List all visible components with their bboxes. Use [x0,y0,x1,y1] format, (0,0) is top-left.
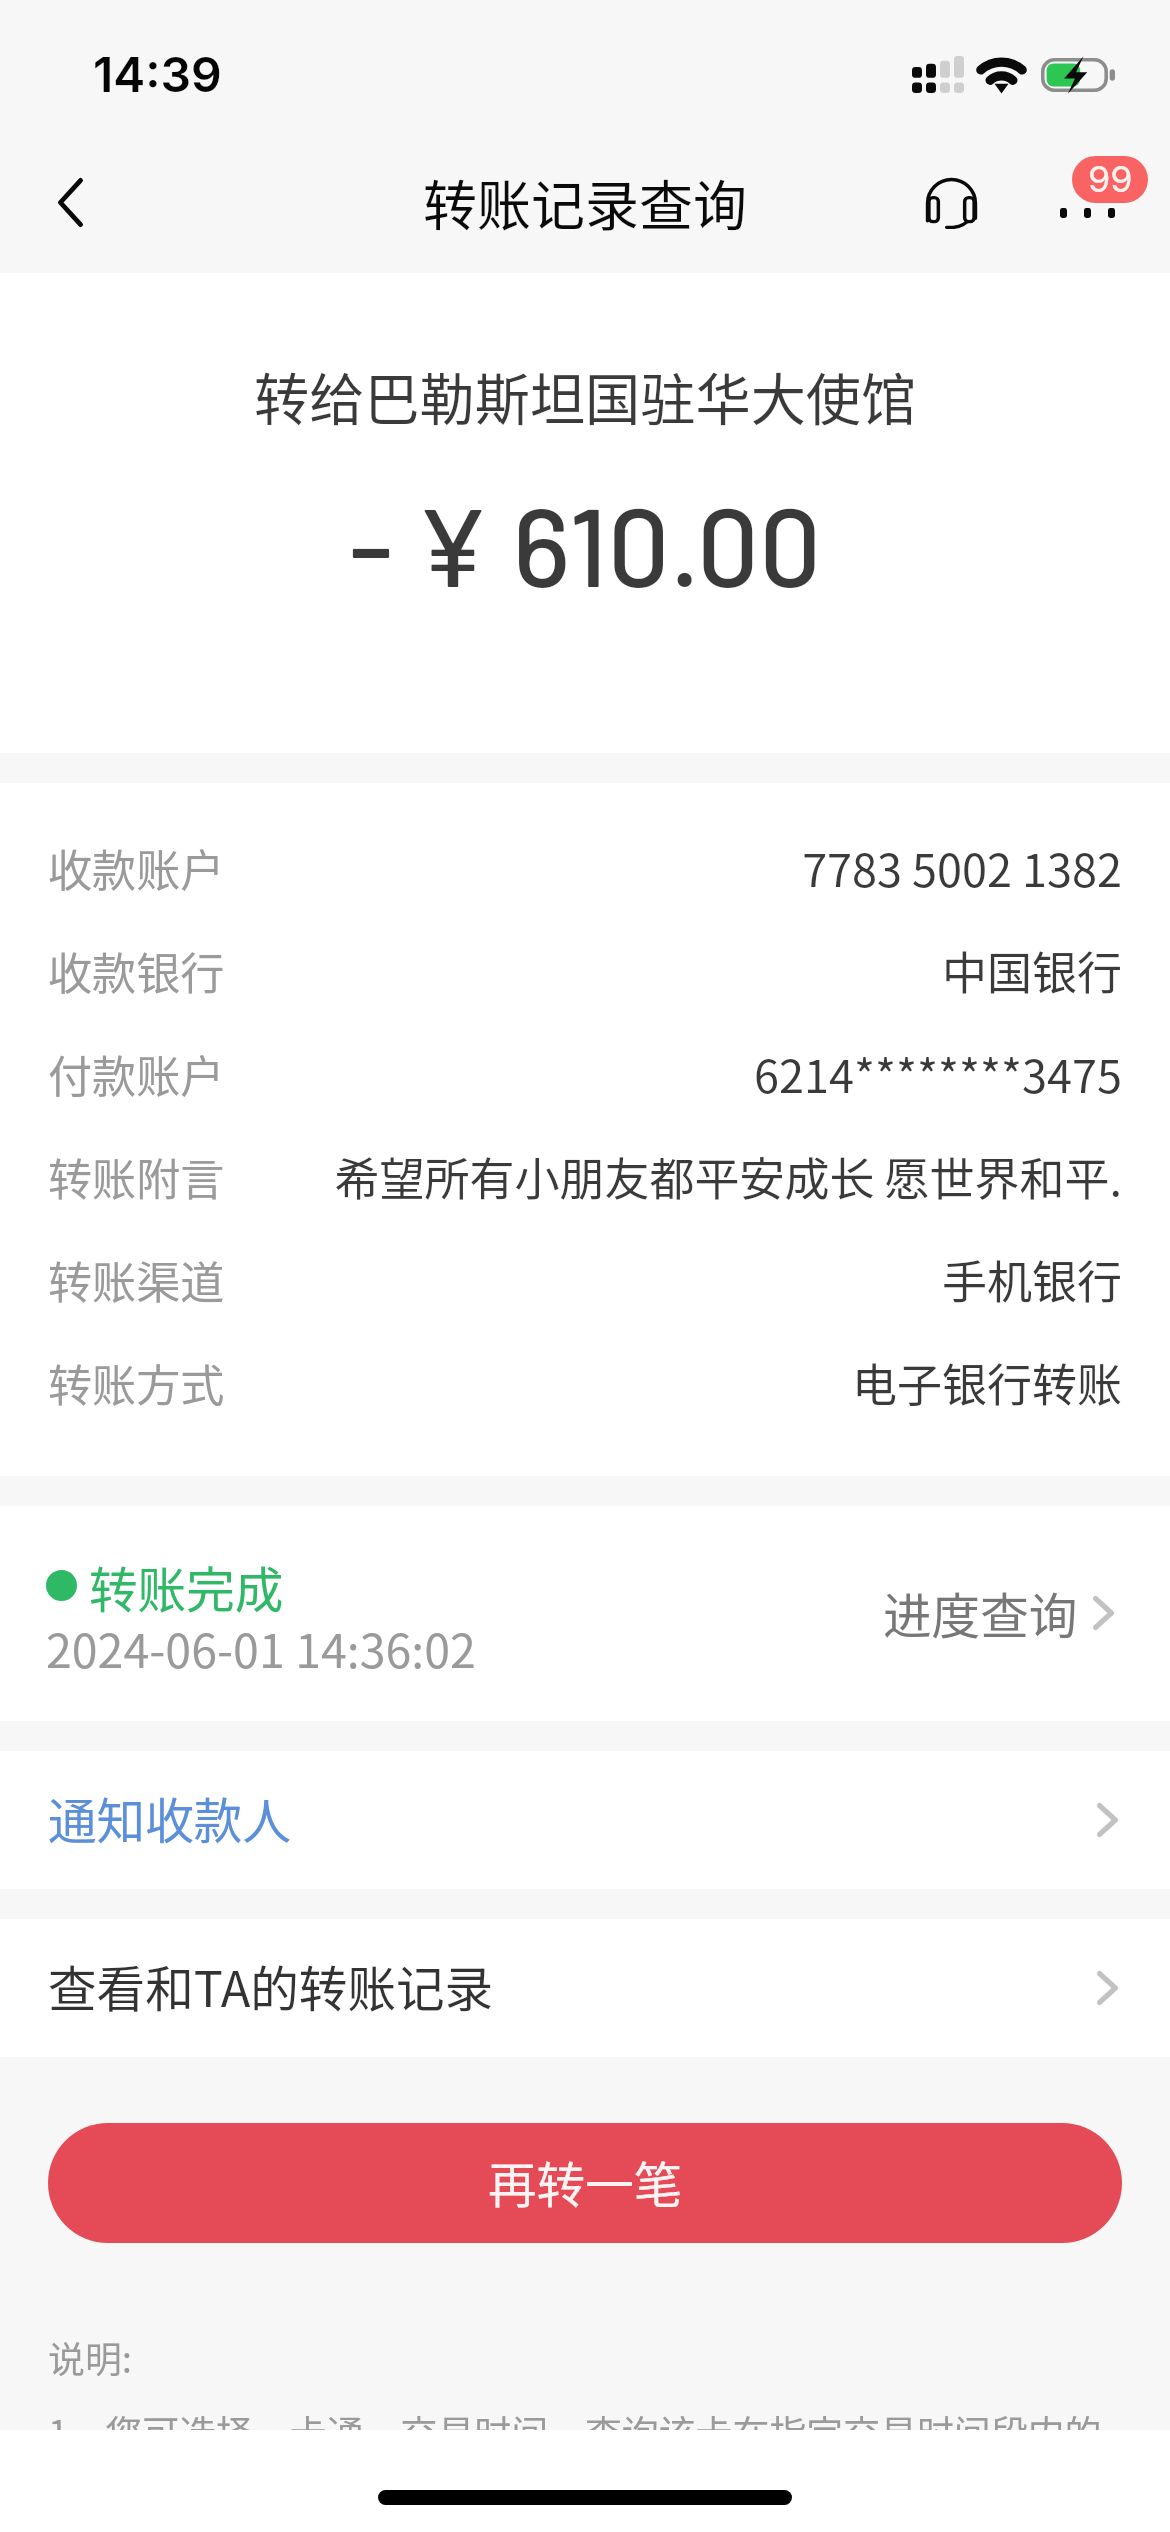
staticText: 转账方式 [48,1351,225,1415]
staticText: 转账附言 [48,1145,225,1209]
button[interactable]: Back [0,132,141,273]
staticText: 手机银行 [243,1247,1122,1312]
staticText: 转给巴勒斯坦国驻华大使馆 [254,356,917,436]
staticText: 再转一笔 [488,2147,683,2217]
staticText: 希望所有小朋友都平安成长 愿世界和平. [243,1144,1122,1209]
button[interactable]: 进度查询 [853,1554,1123,1672]
staticText: 99 [1088,157,1133,201]
staticText: 说明: [48,2330,133,2383]
staticText: 中国银行 [243,938,1122,1003]
staticText: 付款账户 [48,1042,225,1106]
staticText: 转账记录查询 [423,163,747,241]
staticText: 收款银行 [48,939,225,1003]
staticText: 电子银行转账 [243,1350,1122,1415]
staticText: 收款账户 [48,836,225,900]
button[interactable]: 再转一笔 [48,2123,1122,2243]
staticText: 1、您可选择一卡通、交易时间，查询该卡在指定交易时间段内的 [48,2404,1102,2457]
button[interactable]: Customer service [882,134,1020,272]
staticText: 7783 5002 1382 [243,835,1122,900]
staticText: 2024-06-01 14:36:02 [46,1614,476,1681]
staticText: 进度查询 [883,1578,1078,1648]
button[interactable]: 通知收款人 [0,1751,1170,1889]
staticText: 查看和TA的转账记录 [48,1951,1097,2021]
staticText: 6214********3475 [243,1041,1122,1106]
staticText: 14:39 [93,45,222,103]
staticText: 转账完成 [89,1552,284,1622]
staticText: - ¥ 610.00 [349,477,822,609]
staticText: 转账渠道 [48,1248,225,1312]
button[interactable]: More options, 99 unread [1014,134,1152,272]
staticText: 通知收款人 [48,1783,1097,1853]
button[interactable]: 查看和TA的转账记录 [0,1919,1170,2057]
